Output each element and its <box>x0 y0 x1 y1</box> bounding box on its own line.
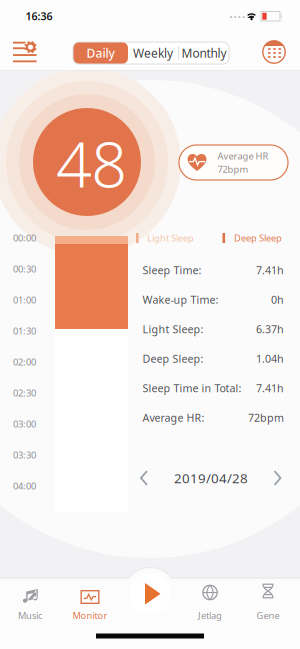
staticText: 0h <box>271 292 284 307</box>
staticText: 72bpm <box>248 410 284 425</box>
button[interactable]: Gene <box>243 579 293 625</box>
staticText: Average HR: <box>142 410 204 425</box>
staticText: Daily <box>86 45 114 61</box>
staticText: Deep Sleep: <box>142 351 203 366</box>
staticText: 01:30 <box>13 325 36 337</box>
button[interactable]: Music <box>5 579 55 625</box>
button[interactable]: Next day <box>270 469 284 487</box>
staticText: Sleep Time in Total: <box>142 381 241 395</box>
staticText: 48 <box>56 122 127 205</box>
staticText: 2019/04/28 <box>174 469 248 487</box>
staticText: Jetlag <box>198 609 222 622</box>
staticText: 00:30 <box>13 263 36 275</box>
button[interactable]: Monthly <box>179 42 229 64</box>
staticText: 01:00 <box>13 294 36 306</box>
staticText: 02:00 <box>13 356 36 368</box>
staticText: Deep Sleep <box>234 232 282 244</box>
staticText: 6.37h <box>256 322 284 336</box>
staticText: Light Sleep: <box>142 322 203 336</box>
button[interactable]: Average HR <box>179 145 288 180</box>
button[interactable]: Monitor <box>64 579 116 625</box>
staticText: 1.04h <box>256 351 284 366</box>
staticText: Wake-up Time: <box>142 292 218 307</box>
staticText: Monthly <box>181 45 226 61</box>
staticText: Music <box>18 609 42 622</box>
staticText: 7.41h <box>256 381 284 395</box>
button[interactable]: Daily <box>73 42 128 64</box>
staticText: 7.41h <box>256 263 284 277</box>
staticText: 02:30 <box>13 387 36 399</box>
staticText: Sleep Time: <box>142 263 201 277</box>
staticText: 00:00 <box>13 232 36 244</box>
staticText: Weekly <box>133 45 173 61</box>
button[interactable]: Jetlag <box>185 579 235 625</box>
staticText: 03:30 <box>13 449 36 461</box>
button[interactable]: Weekly <box>128 42 178 64</box>
staticText: Gene <box>256 609 279 622</box>
staticText: Monitor <box>72 609 107 622</box>
button[interactable]: Calendar <box>261 39 286 64</box>
staticText: 04:00 <box>13 480 36 492</box>
staticText: Light Sleep <box>147 232 194 244</box>
staticText: Average HR <box>217 150 268 162</box>
staticText: 16:36 <box>25 9 52 23</box>
staticText: 03:00 <box>13 418 36 430</box>
button[interactable]: Play <box>129 573 170 614</box>
button[interactable]: Menu <box>8 37 42 67</box>
button[interactable]: Previous day <box>137 469 151 487</box>
staticText: 72bpm <box>217 163 248 175</box>
